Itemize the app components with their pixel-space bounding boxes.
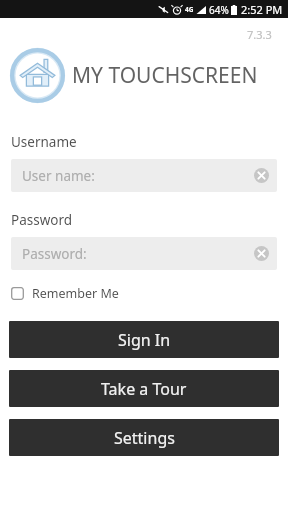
staticText: 4G	[185, 5, 194, 14]
staticText: 2:52 PM	[241, 2, 283, 17]
staticText: Settings	[114, 427, 175, 449]
staticText: Sign In	[118, 329, 171, 351]
staticText: Username	[11, 133, 77, 151]
button[interactable]: Take a Tour	[9, 370, 279, 407]
staticText: User name:	[22, 167, 95, 185]
staticText: 64%	[209, 3, 229, 17]
button[interactable]: Settings	[9, 419, 279, 456]
button[interactable]: User name:	[11, 159, 277, 192]
staticText: Password:	[22, 245, 87, 263]
button[interactable]: Password:	[11, 237, 277, 270]
button[interactable]: Remember Me	[11, 285, 119, 302]
staticText: Take a Tour	[101, 378, 187, 400]
staticText: Remember Me	[32, 285, 119, 302]
staticText: MY TOUCHSCREEN	[72, 61, 258, 90]
button[interactable]: Clear user name	[254, 168, 269, 183]
staticText: Password	[11, 211, 73, 229]
button[interactable]: Sign In	[9, 321, 279, 358]
button[interactable]: Clear password	[254, 246, 269, 261]
staticText: 7.3.3	[247, 27, 272, 42]
